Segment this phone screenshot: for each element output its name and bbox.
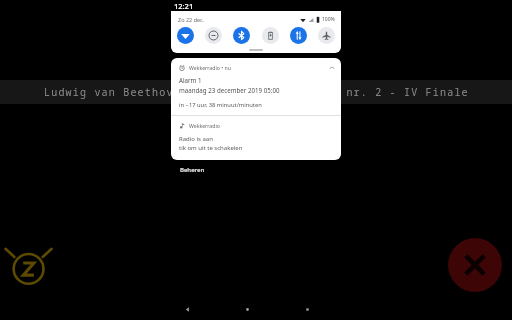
staticText: 12:21 xyxy=(174,1,194,11)
staticText: Alarm 1 xyxy=(179,76,202,84)
staticText: Beheren xyxy=(180,166,205,174)
button[interactable]: Recents xyxy=(296,298,318,320)
button[interactable]: Airplane mode xyxy=(318,27,335,44)
staticText: Radio is aan xyxy=(179,135,213,143)
button[interactable]: Back xyxy=(176,298,198,320)
staticText: Zo 22 dec. xyxy=(178,16,205,23)
button[interactable]: Home xyxy=(236,298,258,320)
button[interactable]: Dismiss alarm xyxy=(448,238,502,292)
staticText: tik om uit te schakelen xyxy=(179,144,243,152)
staticText: Wekkerradio • nu xyxy=(189,64,231,71)
button[interactable]: Wekkerradio • nu xyxy=(171,58,341,115)
button[interactable]: Bluetooth xyxy=(233,27,250,44)
staticText: Wekkerradio xyxy=(189,122,220,129)
button[interactable]: Wi-Fi xyxy=(177,27,194,44)
staticText: 100% xyxy=(322,16,335,23)
button[interactable]: Collapse xyxy=(329,65,335,71)
staticText: maandag 23 december 2019 05:00 xyxy=(179,86,280,94)
button[interactable]: Mobile data xyxy=(290,27,307,44)
staticText: Ludwig van Beethoven / Piano sonata op. … xyxy=(44,85,469,99)
button[interactable]: Wekkerradio xyxy=(171,116,341,160)
staticText: in ~17 uur, 38 minuut/minuten xyxy=(179,101,262,109)
button[interactable]: Battery saver xyxy=(262,27,279,44)
button[interactable]: Snooze alarm xyxy=(6,242,54,290)
button[interactable]: Do not disturb xyxy=(205,27,222,44)
button[interactable]: Beheren xyxy=(180,166,205,174)
